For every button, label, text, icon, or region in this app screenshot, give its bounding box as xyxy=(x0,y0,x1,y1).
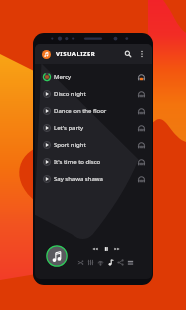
button[interactable]: Playlist xyxy=(125,257,135,267)
staticText: Sport night xyxy=(54,141,86,149)
staticText: Dance on the floor xyxy=(54,107,107,115)
staticText: Let's party xyxy=(54,124,84,132)
button[interactable]: Search xyxy=(122,48,134,60)
staticText: Mercy xyxy=(54,73,72,81)
button[interactable]: Next xyxy=(112,244,122,254)
staticText: Disco night xyxy=(54,90,86,98)
button[interactable]: Headphones xyxy=(136,123,146,133)
button[interactable]: Disco night xyxy=(35,85,152,102)
button[interactable]: Mercy xyxy=(35,68,152,85)
button[interactable]: Dance on the floor xyxy=(35,102,152,119)
staticText: Say shawa shawa xyxy=(54,175,103,183)
button[interactable]: Shuffle xyxy=(75,257,85,267)
button[interactable]: Share xyxy=(115,257,125,267)
button[interactable]: Headphones xyxy=(136,89,146,99)
button[interactable]: Headphones xyxy=(136,106,146,116)
button[interactable]: Headphones xyxy=(136,140,146,150)
button[interactable]: Now playing xyxy=(105,257,115,267)
button[interactable]: More options xyxy=(136,48,148,60)
button[interactable]: Headphones xyxy=(136,72,146,82)
button[interactable]: Sport night xyxy=(35,136,152,153)
button[interactable]: It's time to disco xyxy=(35,153,152,170)
button[interactable]: Let's party xyxy=(35,119,152,136)
button[interactable]: Visualizer logo xyxy=(42,50,51,59)
staticText: VISUALIZER xyxy=(56,50,96,58)
button[interactable]: Headphones xyxy=(136,157,146,167)
button[interactable]: Previous xyxy=(90,244,100,254)
button[interactable]: Pause xyxy=(101,244,111,254)
button[interactable]: Now playing artwork xyxy=(46,245,68,267)
button[interactable]: Headphones xyxy=(136,174,146,184)
button[interactable]: Equalizer xyxy=(85,257,95,267)
button[interactable]: Say shawa shawa xyxy=(35,170,152,187)
staticText: It's time to disco xyxy=(54,158,101,166)
button[interactable]: Cast xyxy=(95,257,105,267)
